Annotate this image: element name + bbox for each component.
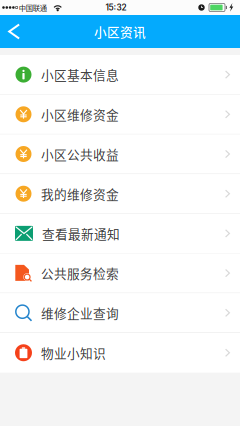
staticText: 小区维修资金: [41, 105, 119, 123]
button[interactable]: 公共服务检索: [0, 253, 240, 293]
staticText: 维修企业查询: [41, 304, 119, 322]
button[interactable]: 我的维修资金: [0, 174, 240, 214]
staticText: 公共服务检索: [41, 264, 119, 282]
button[interactable]: 小区基本信息: [0, 55, 240, 95]
button[interactable]: 维修企业查询: [0, 293, 240, 333]
staticText: 小区基本信息: [41, 65, 119, 84]
staticText: 查看最新通知: [42, 224, 120, 242]
button[interactable]: 小区公共收益: [0, 134, 240, 174]
button[interactable]: 小区维修资金: [0, 95, 240, 134]
staticText: 物业小知识: [41, 344, 106, 362]
button[interactable]: 查看最新通知: [0, 214, 240, 253]
staticText: 小区资讯: [94, 22, 146, 41]
button[interactable]: 物业小知识: [0, 333, 240, 373]
staticText: 15:32: [105, 2, 126, 12]
staticText: 小区公共收益: [41, 145, 119, 163]
button[interactable]: Back: [0, 15, 34, 48]
staticText: 中国联通: [19, 2, 47, 13]
staticText: 我的维修资金: [41, 184, 119, 203]
